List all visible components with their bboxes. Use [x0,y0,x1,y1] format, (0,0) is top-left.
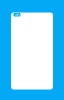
staticText: ab [15,12,19,17]
